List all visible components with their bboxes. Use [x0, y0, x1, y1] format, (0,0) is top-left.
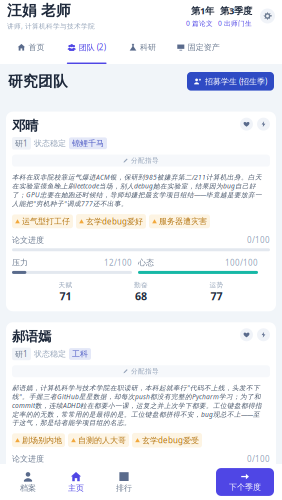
staticText: 邓晴 [12, 118, 38, 134]
staticText: 玄学debug爱好 [86, 216, 143, 227]
staticText: 20/100 [104, 476, 132, 487]
button[interactable]: 激励 [257, 328, 270, 341]
staticText: 勤奋 [134, 281, 148, 289]
button[interactable]: 设置 [260, 8, 275, 23]
button[interactable]: 招募学生 (招生季) [187, 72, 274, 91]
staticText: 100/100 [225, 257, 258, 268]
staticText: 招募学生 (招生季) [205, 76, 267, 87]
button[interactable]: 主页 [52, 466, 100, 498]
staticText: 研1 [15, 349, 28, 359]
staticText: 71 [59, 289, 71, 303]
staticText: 天赋 [58, 281, 72, 289]
staticText: 下个季度 [229, 482, 261, 492]
staticText: 第3季度 [220, 4, 252, 17]
staticText: 团队 (2) [79, 42, 106, 52]
staticText: 压力 [12, 258, 28, 267]
button[interactable]: 下个季度 [216, 468, 274, 496]
staticText: 运势 [209, 281, 223, 289]
button[interactable]: 团队 (2) [59, 32, 115, 64]
staticText: 剧场别内地 [22, 435, 62, 445]
staticText: 68 [135, 289, 147, 303]
staticText: 运气型打工仔 [22, 216, 70, 226]
staticText: 状态稳定 [34, 138, 66, 148]
staticText: 研1 [15, 138, 28, 149]
button[interactable]: 排行 [100, 466, 148, 498]
button[interactable]: 分配指导 [12, 365, 270, 377]
button[interactable]: 激励 [257, 118, 270, 131]
staticText: 分配指导 [131, 367, 159, 375]
staticText: 论文进度 [12, 235, 44, 245]
staticText: 心态 [138, 258, 154, 267]
staticText: 讲师, 计算机科学与技术学院 [7, 22, 95, 30]
staticText: 100/100 [225, 476, 258, 487]
staticText: 排行 [116, 483, 132, 493]
staticText: 0/100 [247, 235, 270, 245]
staticText: 12/100 [104, 257, 132, 268]
button[interactable]: 科研 [115, 32, 170, 64]
staticText: 77 [210, 289, 222, 303]
staticText: 第1年 [191, 4, 214, 17]
staticText: 压力 [12, 477, 28, 486]
button[interactable]: 关心 [240, 328, 253, 341]
staticText: 主页 [68, 483, 84, 493]
staticText: 0 篇论文 [186, 19, 213, 28]
staticText: 郝语嫣，计算机科学与技术学院在职读研，本科起就奉行"代码不上线，头发不下线"。手… [12, 383, 262, 427]
button[interactable]: 关心 [240, 118, 253, 131]
staticText: 论文进度 [12, 454, 44, 464]
button[interactable]: 固定资产 [170, 32, 226, 64]
staticText: 科研 [140, 42, 156, 52]
staticText: 状态稳定 [34, 349, 66, 359]
staticText: 服务器遭灾害 [159, 216, 207, 226]
staticText: 玄学debug爱受 [142, 435, 199, 445]
staticText: 自测的人大哥 [78, 435, 126, 445]
staticText: 研究团队 [8, 72, 68, 90]
staticText: 档案 [20, 483, 36, 493]
staticText: 分配指导 [131, 156, 159, 165]
staticText: 郝语嫣 [12, 328, 51, 345]
button[interactable]: 分配指导 [12, 155, 270, 167]
staticText: 汪娟 老师 [7, 2, 71, 20]
staticText: 固定资产 [188, 42, 220, 52]
button[interactable]: 首页 [3, 32, 59, 64]
staticText: 0/100 [247, 453, 270, 464]
button[interactable]: 档案 [4, 466, 52, 498]
staticText: 工科 [72, 349, 88, 359]
staticText: 首页 [28, 42, 44, 52]
staticText: 本科在双非院校靠运气爆进ACM银，保研到985被嫌弃第二/211计算机出身。白天… [12, 173, 262, 208]
staticText: 锦鲤千马 [72, 138, 104, 148]
staticText: 0 出师门生 [218, 19, 252, 28]
